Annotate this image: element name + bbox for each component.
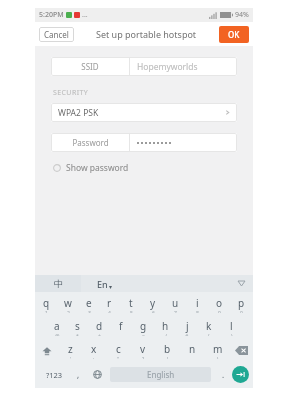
staticText: OK: [228, 29, 240, 40]
staticText: f: [119, 319, 123, 333]
button[interactable]: u: [164, 296, 186, 313]
staticText: En: [97, 278, 108, 290]
button[interactable]: x: [82, 342, 106, 359]
staticText: /: [165, 333, 167, 336]
button[interactable]: f: [110, 319, 132, 336]
staticText: 4: [108, 310, 111, 313]
staticText: 8: [196, 310, 199, 313]
staticText: Show password: [66, 162, 129, 174]
staticText: 94%: [235, 10, 249, 20]
button[interactable]: b: [155, 342, 180, 359]
button[interactable]: English: [110, 367, 211, 382]
staticText: =: [142, 333, 145, 336]
staticText: #: [185, 333, 189, 336]
button[interactable]: m: [205, 342, 230, 359]
staticText: s: [75, 319, 80, 333]
button[interactable]: k: [198, 319, 220, 336]
button[interactable]: Backspace: [230, 342, 252, 359]
button[interactable]: Show password: [51, 160, 131, 176]
button[interactable]: t: [120, 296, 142, 313]
button[interactable]: SSID: [51, 57, 129, 76]
staticText: c: [116, 342, 121, 356]
button[interactable]: e: [78, 296, 99, 313]
button[interactable]: s: [67, 319, 88, 336]
button[interactable]: [130, 133, 237, 152]
button[interactable]: v: [130, 342, 155, 359]
staticText: !: [167, 356, 169, 359]
button[interactable]: Shift: [36, 342, 58, 359]
staticText: Hopemyworlds: [137, 61, 198, 73]
staticText: z: [68, 342, 73, 356]
staticText: w: [64, 296, 72, 310]
button[interactable]: Hopemyworlds: [130, 57, 237, 76]
button[interactable]: j: [176, 319, 198, 336]
staticText: 9: [218, 310, 221, 313]
staticText: @: [55, 333, 60, 336]
staticText: *: [76, 333, 79, 336]
staticText: 0: [240, 310, 243, 313]
staticText: ): [231, 333, 233, 336]
staticText: g: [140, 319, 147, 333]
staticText: ": [117, 356, 120, 359]
staticText: ...: [82, 10, 88, 20]
staticText: i: [196, 296, 199, 310]
staticText: p: [238, 296, 245, 310]
staticText: ': [70, 356, 72, 359]
button[interactable]: Chinese input: [35, 275, 81, 292]
button[interactable]: r: [99, 296, 120, 313]
staticText: :: [93, 356, 95, 359]
staticText: n: [189, 342, 196, 356]
staticText: x: [91, 342, 97, 356]
button[interactable]: .: [214, 365, 232, 384]
button[interactable]: OK: [219, 26, 249, 43]
staticText: Password: [72, 137, 109, 148]
button[interactable]: ?123: [39, 365, 69, 384]
button[interactable]: Change language: [87, 365, 107, 384]
button[interactable]: ,: [69, 365, 87, 384]
staticText: v: [140, 342, 146, 356]
button[interactable]: o: [208, 296, 230, 313]
staticText: Cancel: [44, 29, 69, 40]
staticText: y: [150, 296, 156, 310]
button[interactable]: y: [142, 296, 164, 313]
staticText: ?: [142, 356, 145, 359]
button[interactable]: a: [46, 319, 67, 336]
button[interactable]: i: [186, 296, 208, 313]
button[interactable]: n: [180, 342, 205, 359]
staticText: +: [98, 333, 101, 336]
button[interactable]: h: [154, 319, 176, 336]
button[interactable]: p: [230, 296, 252, 313]
staticText: l: [230, 319, 233, 333]
staticText: d: [96, 319, 103, 333]
button[interactable]: l: [220, 319, 242, 336]
button[interactable]: g: [132, 319, 154, 336]
staticText: r: [107, 296, 112, 310]
staticText: 6: [152, 310, 155, 313]
staticText: m: [213, 342, 223, 356]
staticText: \: [217, 356, 219, 359]
staticText: English: [147, 369, 175, 380]
staticText: 1: [45, 310, 48, 313]
button[interactable]: z: [58, 342, 82, 359]
staticText: a: [54, 319, 60, 333]
staticText: q: [43, 296, 50, 310]
staticText: 2: [67, 310, 70, 313]
staticText: u: [172, 296, 179, 310]
button[interactable]: w: [57, 296, 78, 313]
staticText: t: [129, 296, 133, 310]
button[interactable]: Password: [51, 133, 129, 152]
button[interactable]: c: [106, 342, 130, 359]
button[interactable]: q: [36, 296, 57, 313]
button[interactable]: Enter: [232, 366, 249, 383]
button[interactable]: WPA2 PSK: [51, 103, 237, 122]
staticText: 5:20PM: [39, 10, 64, 20]
button[interactable]: Cancel: [39, 27, 74, 42]
button[interactable]: d: [88, 319, 110, 336]
button[interactable]: En: [81, 275, 127, 292]
staticText: j: [186, 319, 189, 333]
button[interactable]: Hide keyboard: [229, 275, 253, 292]
staticText: SECURITY: [53, 88, 89, 98]
staticText: SSID: [81, 61, 99, 72]
